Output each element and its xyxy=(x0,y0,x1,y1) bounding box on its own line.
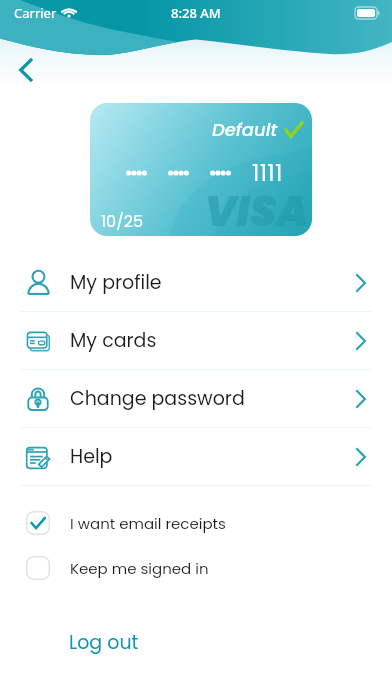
staticText: Change password xyxy=(70,385,245,412)
staticText: VISA xyxy=(205,183,309,236)
staticText: 8:28 AM xyxy=(171,4,221,22)
button[interactable]: My profile xyxy=(0,254,392,311)
button[interactable]: My cards xyxy=(0,312,392,369)
button[interactable]: VISA xyxy=(90,103,312,236)
staticText: Keep me signed in xyxy=(70,558,209,579)
staticText: Carrier xyxy=(14,4,57,22)
button[interactable]: Help xyxy=(0,428,392,485)
button[interactable]: Change password xyxy=(0,370,392,427)
staticText: Help xyxy=(70,443,113,470)
staticText: 1111 xyxy=(252,157,283,189)
button[interactable]: Keep me signed in xyxy=(0,556,392,580)
button[interactable]: Back xyxy=(8,52,44,88)
button[interactable]: I want email receipts xyxy=(0,511,392,535)
staticText: My profile xyxy=(70,269,162,296)
staticText: Log out xyxy=(69,629,139,656)
staticText: Default xyxy=(212,117,278,142)
staticText: I want email receipts xyxy=(70,513,226,534)
button[interactable]: Log out xyxy=(56,617,152,668)
staticText: My cards xyxy=(70,327,157,354)
staticText: 10/25 xyxy=(101,210,144,232)
